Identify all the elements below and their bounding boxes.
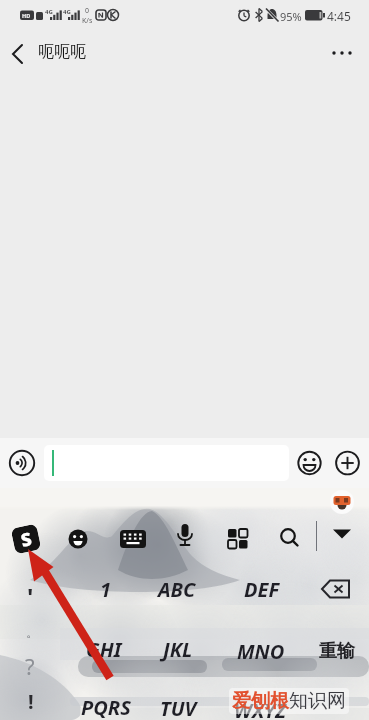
staticText: 1 <box>100 576 112 603</box>
staticText: WXYZ <box>234 697 287 720</box>
staticText: 4:45 <box>327 8 351 24</box>
staticText: GHI <box>86 636 122 663</box>
button[interactable] <box>330 524 355 542</box>
staticText: 95% <box>280 9 302 24</box>
staticText: HD <box>22 12 31 19</box>
staticText: DEF <box>244 576 280 603</box>
button[interactable] <box>175 522 195 552</box>
button[interactable]: JKL <box>143 635 213 663</box>
staticText: S <box>19 526 35 553</box>
staticText: 呃呃呃 <box>38 42 86 62</box>
button[interactable]: GHI <box>69 635 139 663</box>
staticText: 0 <box>85 6 90 16</box>
staticText: 4G <box>63 8 71 16</box>
staticText: 爱刨根 <box>232 689 289 713</box>
button[interactable]: S <box>9 522 43 556</box>
staticText: ABC <box>158 576 196 603</box>
button[interactable] <box>294 447 325 478</box>
button[interactable]: TUV <box>143 694 213 720</box>
button[interactable] <box>278 527 302 551</box>
staticText: TUV <box>160 695 197 720</box>
staticText: ? <box>25 651 35 681</box>
button[interactable]: MNO <box>226 637 296 665</box>
button[interactable]: DEF <box>227 575 297 603</box>
staticText: JKL <box>163 636 193 663</box>
button[interactable] <box>330 490 354 514</box>
button[interactable] <box>227 528 249 550</box>
button[interactable]: ABC <box>142 575 212 603</box>
button[interactable] <box>326 36 358 68</box>
button[interactable]: WXYZ <box>225 696 295 720</box>
button[interactable] <box>44 445 289 481</box>
staticText: K/s <box>82 16 93 26</box>
button[interactable]: 1 <box>71 575 141 603</box>
button[interactable]: PQRS <box>71 693 141 720</box>
button[interactable] <box>6 447 38 479</box>
button[interactable]: 重输 <box>306 637 368 665</box>
button[interactable] <box>67 529 89 551</box>
staticText: 知识网 <box>289 689 346 713</box>
staticText: 4G <box>45 8 53 16</box>
staticText: ! <box>28 688 34 715</box>
staticText: 重输 <box>319 640 355 663</box>
staticText: 。 <box>26 624 39 640</box>
staticText: PQRS <box>81 694 131 720</box>
staticText: ' <box>27 580 34 613</box>
button[interactable] <box>332 447 363 478</box>
button[interactable] <box>119 528 147 550</box>
button[interactable] <box>318 576 356 602</box>
staticText: MNO <box>237 638 285 665</box>
button[interactable] <box>4 38 36 70</box>
